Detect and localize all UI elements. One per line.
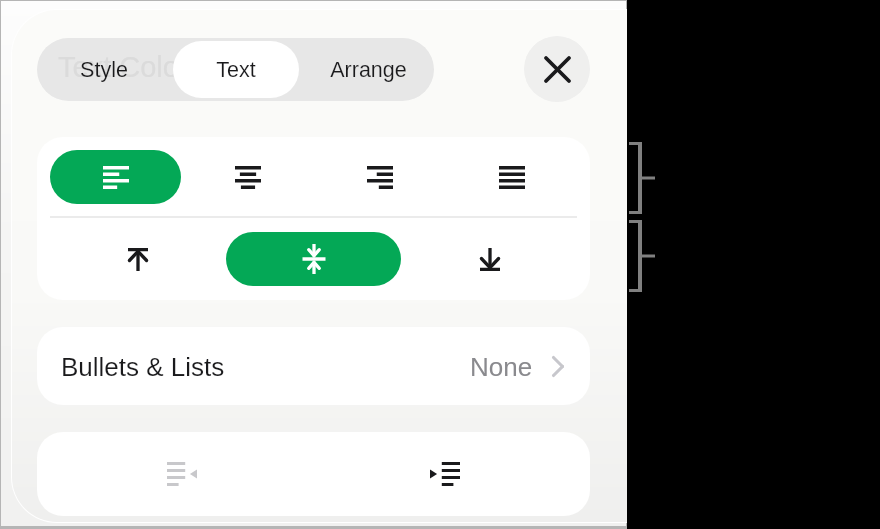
button[interactable]: Align bottom: [402, 232, 577, 286]
button[interactable]: Close: [524, 36, 590, 102]
staticText: Style: [80, 58, 128, 82]
button[interactable]: Align middle: [226, 232, 401, 286]
button[interactable]: Align left: [50, 150, 181, 204]
button[interactable]: Decrease indent: [82, 447, 282, 501]
button[interactable]: Arrange: [305, 41, 431, 98]
button[interactable]: Increase indent: [345, 447, 545, 501]
button[interactable]: Align center: [182, 150, 313, 204]
staticText: None: [470, 352, 533, 381]
button[interactable]: Justify: [446, 150, 577, 204]
staticText: Text: [216, 58, 256, 82]
button[interactable]: Style: [40, 41, 167, 98]
staticText: Bullets & Lists: [61, 352, 225, 381]
button[interactable]: Align top: [50, 232, 225, 286]
staticText: Text Color: [58, 51, 189, 83]
button[interactable]: Align right: [314, 150, 445, 204]
button[interactable]: Text: [173, 41, 299, 98]
button[interactable]: Bullets & Lists: [37, 327, 590, 405]
staticText: Arrange: [330, 58, 407, 82]
